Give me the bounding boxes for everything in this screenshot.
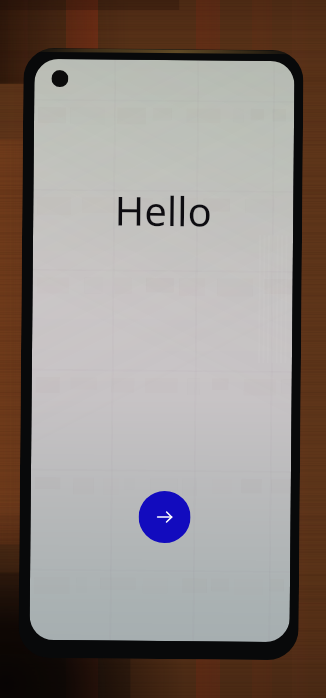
button[interactable]: Next xyxy=(138,491,191,543)
staticText: Hello xyxy=(114,183,212,237)
